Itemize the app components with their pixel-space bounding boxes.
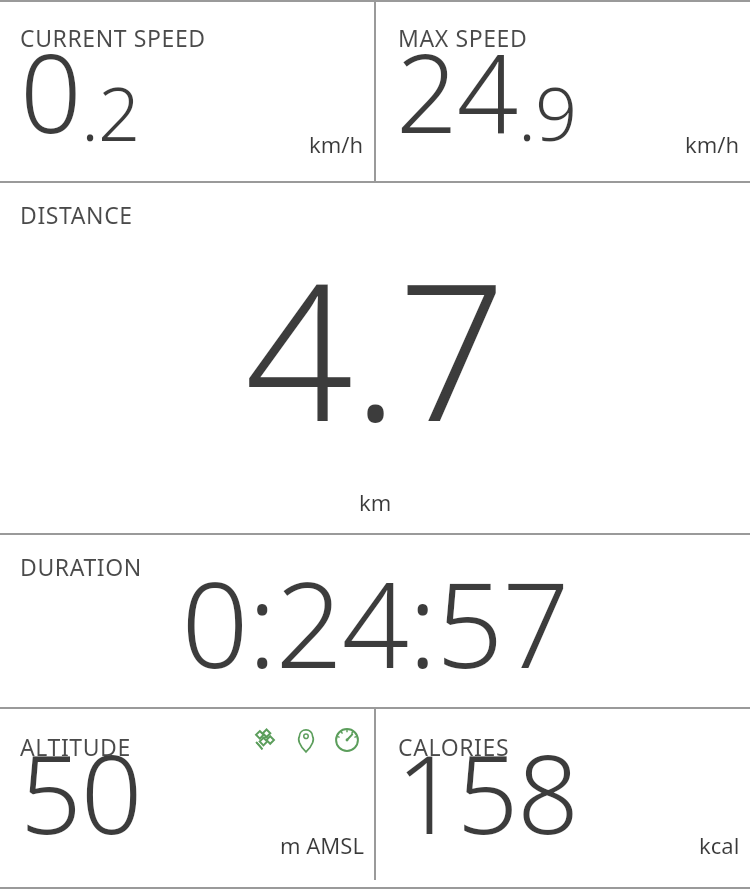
staticText: DISTANCE <box>20 199 133 230</box>
staticText: 24 <box>396 18 518 165</box>
staticText: km <box>359 487 392 517</box>
staticText: km/h <box>685 129 740 159</box>
staticText: 50 <box>20 719 142 866</box>
staticText: CURRENT SPEED <box>20 22 206 53</box>
button[interactable]: CALORIES <box>376 709 750 880</box>
staticText: .2 <box>81 62 140 163</box>
staticText: 4.7 <box>0 218 750 477</box>
staticText: 158 <box>396 719 579 866</box>
staticText: MAX SPEED <box>398 22 528 53</box>
button[interactable]: Location fix <box>291 725 321 755</box>
staticText: DURATION <box>20 551 142 582</box>
button[interactable]: GPS satellite signal <box>250 725 280 755</box>
staticText: km/h <box>309 129 364 159</box>
button[interactable]: ALTITUDE <box>0 709 374 880</box>
button[interactable]: DURATION <box>0 535 750 707</box>
staticText: CALORIES <box>398 731 510 762</box>
button[interactable]: DISTANCE <box>0 183 750 533</box>
staticText: m AMSL <box>280 830 364 860</box>
button[interactable]: CURRENT SPEED <box>0 2 374 181</box>
staticText: .9 <box>518 62 577 163</box>
button[interactable]: MAX SPEED <box>376 2 750 181</box>
staticText: kcal <box>699 830 740 860</box>
staticText: 0:24:57 <box>0 542 750 703</box>
button[interactable]: Speed sensor <box>332 725 362 755</box>
staticText: 0 <box>20 18 81 165</box>
staticText: ALTITUDE <box>20 731 131 762</box>
